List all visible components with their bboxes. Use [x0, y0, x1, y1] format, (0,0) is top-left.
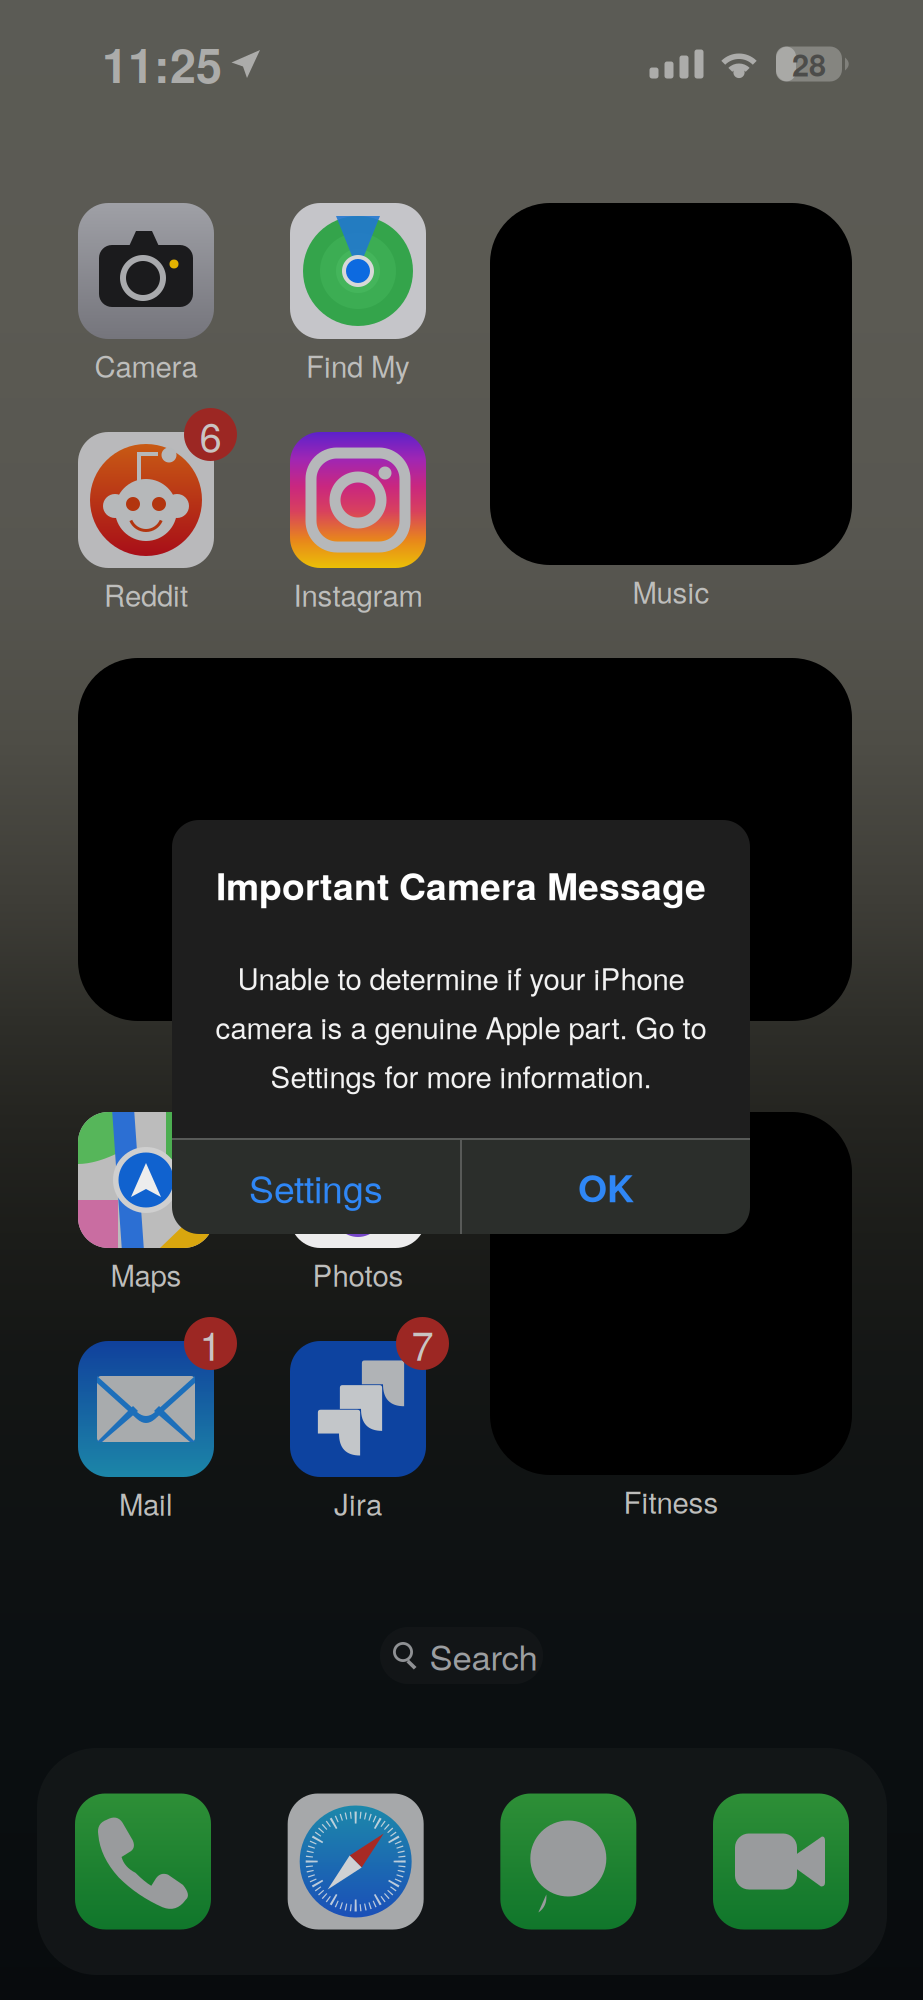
- staticText: Music: [632, 570, 709, 612]
- staticText: Unable to determine if your iPhone: [237, 956, 684, 998]
- staticText: Instagram: [293, 573, 422, 615]
- button[interactable]: Find My: [238, 203, 478, 378]
- button[interactable]: Messages: [500, 1793, 636, 1929]
- staticText: Find My: [306, 344, 410, 386]
- button[interactable]: Photos: [238, 1112, 478, 1287]
- button[interactable]: Instagram: [238, 432, 478, 607]
- staticText: Camera: [94, 344, 197, 386]
- staticText: 7: [411, 1315, 433, 1372]
- staticText: Settings: [249, 1160, 383, 1214]
- button[interactable]: Search: [380, 1627, 543, 1684]
- button[interactable]: Camera: [26, 203, 266, 378]
- button[interactable]: Music: [490, 203, 852, 604]
- button[interactable]: Maps: [26, 1112, 266, 1287]
- button[interactable]: 7: [238, 1341, 478, 1516]
- staticText: Mail: [119, 1482, 173, 1524]
- staticText: 28: [792, 42, 826, 86]
- button[interactable]: Phone: [75, 1793, 211, 1929]
- staticText: Maps: [110, 1253, 181, 1295]
- staticText: Search: [429, 1631, 537, 1680]
- staticText: Reddit: [104, 573, 188, 615]
- button[interactable]: Settings: [172, 1140, 460, 1234]
- button[interactable]: Safari: [288, 1793, 424, 1929]
- button[interactable]: Fitness: [490, 1112, 852, 1514]
- staticText: Photos: [312, 1253, 403, 1295]
- staticText: Settings for more information.: [270, 1054, 651, 1096]
- button[interactable]: 6: [26, 432, 266, 607]
- button[interactable]: 1: [26, 1341, 266, 1516]
- staticText: Jira: [334, 1482, 382, 1524]
- staticText: Important Camera Message: [216, 858, 706, 912]
- button[interactable]: Widget: [78, 658, 852, 1021]
- staticText: 11:25: [102, 31, 222, 97]
- staticText: Fitness: [623, 1480, 718, 1522]
- staticText: 1: [199, 1315, 221, 1372]
- button[interactable]: FaceTime: [713, 1793, 849, 1929]
- staticText: 6: [199, 406, 221, 463]
- staticText: OK: [578, 1160, 634, 1214]
- button[interactable]: OK: [462, 1140, 750, 1234]
- staticText: camera is a genuine Apple part. Go to: [215, 1005, 706, 1047]
